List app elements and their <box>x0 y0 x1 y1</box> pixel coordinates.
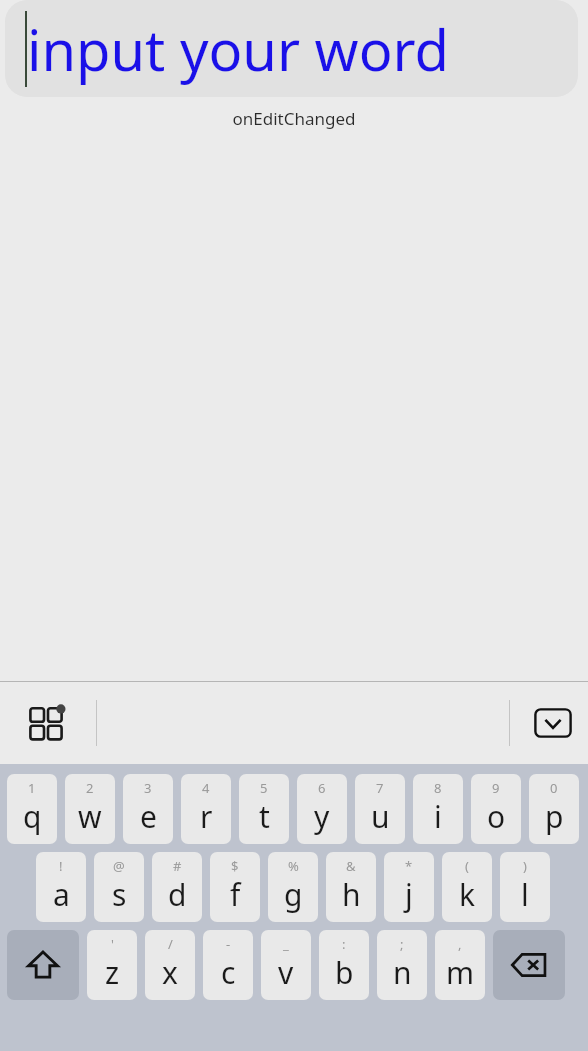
staticText: ' <box>111 935 114 953</box>
staticText: # <box>173 857 182 875</box>
button[interactable]: 7 <box>355 774 405 844</box>
button[interactable]: ( <box>442 852 492 922</box>
button[interactable]: * <box>384 852 434 922</box>
staticText: 1 <box>28 779 36 797</box>
button[interactable]: & <box>326 852 376 922</box>
staticText: f <box>230 874 241 915</box>
button[interactable]: 5 <box>239 774 289 844</box>
staticText: r <box>200 796 213 837</box>
button[interactable]: ' <box>87 930 137 1000</box>
staticText: 0 <box>550 779 558 797</box>
staticText: onEditChanged <box>232 107 356 130</box>
staticText: w <box>78 796 102 837</box>
staticText: : <box>342 935 346 953</box>
button[interactable]: 4 <box>181 774 231 844</box>
staticText: ! <box>59 857 63 875</box>
staticText: g <box>284 874 303 915</box>
staticText: 7 <box>376 779 384 797</box>
button[interactable]: % <box>268 852 318 922</box>
staticText: s <box>112 874 127 915</box>
staticText: * <box>405 857 413 875</box>
staticText: m <box>446 952 475 993</box>
staticText: e <box>140 796 157 837</box>
staticText: , <box>458 935 462 953</box>
button[interactable]: - <box>203 930 253 1000</box>
button[interactable]: 0 <box>529 774 579 844</box>
staticText: 4 <box>202 779 210 797</box>
staticText: p <box>545 796 564 837</box>
staticText: c <box>221 952 236 993</box>
staticText: 2 <box>86 779 94 797</box>
staticText: 3 <box>144 779 152 797</box>
button[interactable]: 9 <box>471 774 521 844</box>
staticText: u <box>371 796 390 837</box>
staticText: @ <box>113 857 125 875</box>
staticText: z <box>105 952 120 993</box>
button[interactable]: : <box>319 930 369 1000</box>
staticText: j <box>405 874 413 915</box>
staticText: ) <box>523 857 527 875</box>
staticText: t <box>259 796 270 837</box>
staticText: 6 <box>318 779 326 797</box>
staticText: 9 <box>492 779 500 797</box>
staticText: _ <box>283 935 289 953</box>
button[interactable]: $ <box>210 852 260 922</box>
button[interactable]: Backspace <box>493 930 565 1000</box>
button[interactable]: / <box>145 930 195 1000</box>
staticText: n <box>393 952 412 993</box>
staticText: input your word <box>27 11 449 87</box>
button[interactable]: # <box>152 852 202 922</box>
staticText: 5 <box>260 779 268 797</box>
staticText: - <box>226 935 231 953</box>
button[interactable]: ! <box>36 852 86 922</box>
button[interactable]: _ <box>261 930 311 1000</box>
button[interactable]: 2 <box>65 774 115 844</box>
staticText: q <box>23 796 42 837</box>
staticText: h <box>342 874 361 915</box>
button[interactable]: Shift <box>7 930 79 1000</box>
button[interactable]: 8 <box>413 774 463 844</box>
staticText: 8 <box>434 779 442 797</box>
button[interactable]: 3 <box>123 774 173 844</box>
button[interactable]: @ <box>94 852 144 922</box>
staticText: k <box>459 874 476 915</box>
staticText: ; <box>400 935 404 953</box>
staticText: v <box>278 952 294 993</box>
button[interactable]: ; <box>377 930 427 1000</box>
staticText: x <box>162 952 178 993</box>
staticText: & <box>346 857 356 875</box>
staticText: $ <box>231 857 239 875</box>
staticText: a <box>53 874 70 915</box>
staticText: b <box>335 952 354 993</box>
button[interactable]: Keyboard apps <box>22 697 74 749</box>
staticText: d <box>168 874 187 915</box>
button[interactable]: Hide keyboard <box>530 700 576 746</box>
button[interactable]: , <box>435 930 485 1000</box>
button[interactable]: 1 <box>7 774 57 844</box>
staticText: y <box>314 796 330 837</box>
staticText: % <box>288 857 299 875</box>
button[interactable]: 6 <box>297 774 347 844</box>
staticText: / <box>168 935 173 953</box>
staticText: o <box>487 796 506 837</box>
staticText: l <box>521 874 529 915</box>
staticText: i <box>434 796 442 837</box>
button[interactable]: ) <box>500 852 550 922</box>
button[interactable]: input your word <box>5 0 578 97</box>
staticText: ( <box>465 857 469 875</box>
